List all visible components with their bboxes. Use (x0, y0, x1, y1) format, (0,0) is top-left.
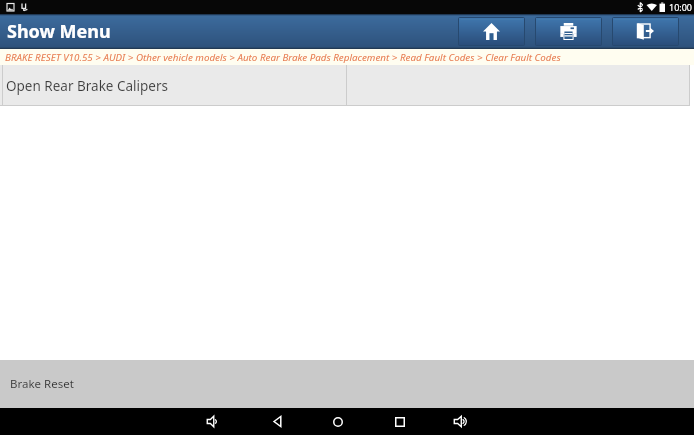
button[interactable]: Volume up (447, 408, 475, 435)
staticText: Open Rear Brake Calipers (6, 77, 168, 95)
button[interactable]: Volume down (199, 408, 227, 435)
staticText: Show Menu (7, 19, 111, 44)
button[interactable]: Back (263, 408, 291, 435)
staticText: 10:00 (669, 1, 693, 13)
button[interactable]: Home (458, 17, 525, 46)
button[interactable]: Home (324, 408, 352, 435)
button[interactable]: Open Rear Brake Calipers (0, 65, 694, 106)
button[interactable]: Print (535, 17, 602, 46)
staticText: Brake Reset (10, 376, 74, 392)
staticText: BRAKE RESET V10.55 > AUDI > Other vehicl… (5, 51, 561, 64)
button[interactable]: Recents (386, 408, 414, 435)
button[interactable]: Exit (612, 17, 679, 46)
